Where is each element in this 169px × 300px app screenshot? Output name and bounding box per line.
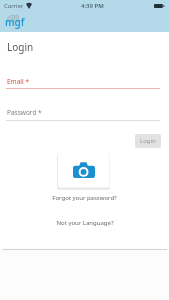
staticText: Login <box>140 137 156 145</box>
button[interactable]: Not your Language? <box>50 216 120 230</box>
staticText: Not your Language? <box>56 219 114 227</box>
staticText: 4:39 PM <box>81 2 104 10</box>
staticText: Carrier <box>4 2 24 10</box>
staticText: mgf <box>5 15 25 29</box>
button[interactable]: Take photo <box>58 153 109 187</box>
button[interactable]: Login <box>135 134 161 148</box>
staticText: Password * <box>7 108 42 117</box>
staticText: Email * <box>7 77 29 86</box>
staticText: Login <box>7 40 34 54</box>
button[interactable]: Forgot your password? <box>46 191 123 205</box>
staticText: Forgot your password? <box>52 194 117 202</box>
